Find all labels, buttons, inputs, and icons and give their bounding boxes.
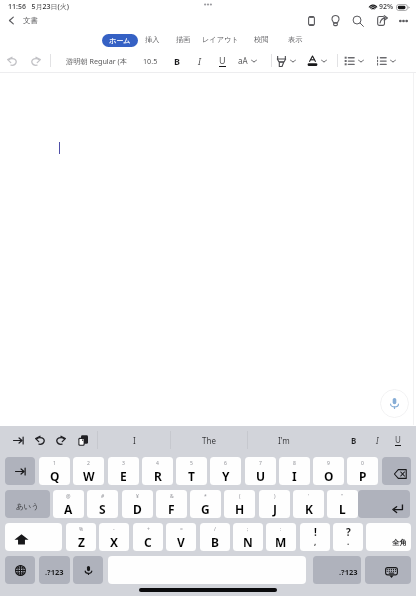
button[interactable]: ; bbox=[233, 523, 263, 551]
button[interactable]: @ bbox=[53, 490, 84, 518]
button[interactable]: % bbox=[66, 523, 96, 551]
button[interactable] bbox=[307, 50, 327, 71]
button[interactable]: Search bbox=[349, 12, 367, 29]
button[interactable]: Change keyboard bbox=[5, 556, 35, 584]
staticText: Y bbox=[222, 468, 230, 484]
button[interactable]: 游明朝 Regular (本 bbox=[62, 50, 131, 71]
staticText: 游明朝 Regular (本 bbox=[66, 56, 127, 66]
button[interactable]: # bbox=[87, 490, 118, 518]
button[interactable]: ホーム bbox=[102, 34, 138, 47]
button[interactable]: 8 bbox=[279, 457, 310, 485]
staticText: I bbox=[198, 55, 201, 67]
button[interactable]: 3 bbox=[108, 457, 139, 485]
button[interactable]: 1 bbox=[39, 457, 70, 485]
button[interactable] bbox=[344, 50, 364, 71]
button[interactable]: ( bbox=[224, 490, 255, 518]
button[interactable]: + bbox=[133, 523, 163, 551]
button[interactable] bbox=[376, 50, 396, 71]
button[interactable]: B bbox=[345, 426, 363, 454]
staticText: E bbox=[120, 468, 127, 484]
button[interactable]: 10.5 bbox=[139, 50, 162, 71]
staticText: ' bbox=[308, 493, 310, 500]
button[interactable]: : bbox=[266, 523, 296, 551]
button[interactable]: .?123 bbox=[313, 556, 361, 584]
staticText: ; bbox=[247, 526, 249, 533]
button[interactable]: レイアウト bbox=[198, 32, 243, 47]
button[interactable]: ? bbox=[333, 523, 363, 551]
button[interactable]: & bbox=[156, 490, 187, 518]
button[interactable]: B bbox=[168, 50, 186, 71]
button[interactable]: Paste bbox=[73, 426, 93, 454]
button[interactable]: 校閲 bbox=[249, 32, 273, 47]
staticText: 2 bbox=[87, 460, 90, 467]
button[interactable]: 表示 bbox=[283, 32, 307, 47]
button[interactable]: Mobile view bbox=[302, 12, 320, 29]
staticText: 6 bbox=[224, 460, 227, 467]
button[interactable]: Backspace bbox=[382, 457, 411, 485]
button[interactable]: .?123 bbox=[39, 556, 70, 584]
staticText: , bbox=[314, 536, 317, 547]
staticText: 0 bbox=[361, 460, 364, 467]
button[interactable]: Kana bbox=[5, 490, 50, 518]
button[interactable]: Back bbox=[3, 12, 19, 29]
button[interactable]: I bbox=[368, 426, 386, 454]
button[interactable]: 4 bbox=[142, 457, 173, 485]
staticText: D bbox=[133, 501, 142, 517]
button[interactable]: 0 bbox=[347, 457, 378, 485]
button[interactable]: 9 bbox=[313, 457, 344, 485]
staticText: I'm bbox=[278, 435, 290, 446]
button[interactable]: 全角 bbox=[366, 523, 411, 551]
button[interactable]: Tab bbox=[8, 426, 28, 454]
button[interactable]: Hide keyboard bbox=[365, 556, 411, 584]
staticText: " bbox=[341, 493, 344, 500]
staticText: L bbox=[339, 501, 346, 517]
button[interactable]: aA bbox=[238, 50, 257, 71]
button[interactable]: 7 bbox=[245, 457, 276, 485]
button[interactable] bbox=[276, 50, 296, 71]
staticText: I bbox=[133, 435, 136, 446]
button[interactable]: Redo bbox=[50, 426, 70, 454]
button[interactable]: Tab bbox=[5, 457, 35, 485]
button[interactable]: 2 bbox=[73, 457, 104, 485]
button[interactable]: 挿入 bbox=[140, 32, 164, 47]
staticText: G bbox=[201, 501, 210, 517]
button[interactable]: ' bbox=[293, 490, 324, 518]
button[interactable]: ) bbox=[259, 490, 290, 518]
button[interactable]: 描画 bbox=[171, 32, 195, 47]
button[interactable]: ! bbox=[300, 523, 330, 551]
button[interactable]: Undo bbox=[3, 50, 21, 71]
button[interactable]: Share bbox=[373, 12, 391, 29]
button[interactable]: = bbox=[166, 523, 196, 551]
button[interactable]: U bbox=[389, 426, 407, 454]
button[interactable]: - bbox=[99, 523, 129, 551]
button[interactable]: Undo bbox=[30, 426, 50, 454]
button[interactable]: I'm bbox=[260, 426, 308, 454]
button[interactable]: The bbox=[185, 426, 233, 454]
button[interactable]: Shift bbox=[5, 523, 62, 551]
button[interactable]: Return bbox=[358, 490, 410, 518]
button[interactable]: Redo bbox=[26, 50, 44, 71]
button[interactable]: 6 bbox=[210, 457, 241, 485]
staticText: あいう bbox=[16, 502, 40, 511]
button[interactable]: U bbox=[213, 50, 231, 71]
button[interactable]: ¥ bbox=[122, 490, 153, 518]
button[interactable]: Ideas bbox=[326, 12, 344, 29]
button[interactable]: / bbox=[200, 523, 230, 551]
staticText: H bbox=[235, 501, 245, 517]
staticText: M bbox=[275, 534, 287, 550]
staticText: W bbox=[83, 468, 95, 484]
button[interactable]: Dictation bbox=[73, 556, 103, 584]
button[interactable]: More options bbox=[394, 12, 412, 29]
button[interactable]: I bbox=[190, 50, 208, 71]
button[interactable]: * bbox=[190, 490, 221, 518]
staticText: / bbox=[214, 526, 216, 533]
button[interactable]: " bbox=[327, 490, 358, 518]
button[interactable]: I bbox=[110, 426, 158, 454]
staticText: 描画 bbox=[176, 35, 191, 44]
staticText: * bbox=[204, 493, 207, 500]
button[interactable]: Dictate bbox=[380, 389, 409, 418]
button[interactable]: 5 bbox=[176, 457, 207, 485]
button[interactable]: 文書 bbox=[23, 12, 38, 29]
staticText: 校閲 bbox=[254, 35, 269, 44]
